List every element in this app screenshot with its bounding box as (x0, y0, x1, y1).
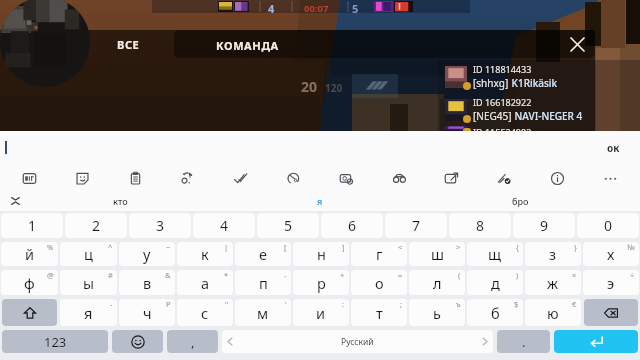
button[interactable]: Handwriting (280, 165, 306, 191)
staticText: р (317, 273, 326, 293)
button[interactable]: 3 (129, 213, 191, 238)
button[interactable]: , (167, 330, 218, 353)
staticText: { (516, 242, 519, 252)
button[interactable]: бро (430, 191, 610, 211)
button[interactable]: ы (60, 270, 117, 295)
staticText: кто (113, 195, 128, 207)
staticText: н (317, 244, 326, 264)
staticText: й (25, 244, 35, 264)
button[interactable]: ф (1, 270, 58, 295)
button[interactable]: х (583, 242, 639, 266)
staticText: п (259, 273, 268, 293)
button[interactable]: а (177, 270, 233, 295)
button[interactable]: ID 166182922 (438, 93, 640, 126)
button[interactable]: Shift (2, 299, 57, 326)
staticText: % (47, 242, 54, 252)
button[interactable]: о (351, 270, 407, 295)
button[interactable]: 9 (513, 213, 575, 238)
button[interactable]: ч (119, 299, 175, 326)
button[interactable]: в (119, 270, 175, 295)
staticText: 3 (156, 216, 165, 235)
button[interactable]: Emoji (112, 330, 163, 353)
staticText: о (375, 273, 384, 293)
button[interactable]: Translate (174, 165, 200, 191)
button[interactable]: г (351, 242, 407, 266)
staticText: у (143, 244, 151, 264)
staticText: 120 (325, 81, 343, 95)
button[interactable]: ь (409, 299, 465, 326)
button[interactable]: 1 (1, 213, 63, 238)
staticText: NAVI-NEGER 4 (512, 109, 583, 123)
staticText: бро (512, 195, 529, 207)
button[interactable]: Clipboard (122, 165, 148, 191)
button[interactable]: 8 (449, 213, 511, 238)
button[interactable]: Expand suggestions (3, 191, 27, 211)
staticText: [shhxg] (473, 76, 509, 90)
staticText: г (376, 244, 383, 264)
button[interactable]: 2 (65, 213, 127, 238)
button[interactable]: я (230, 191, 410, 211)
staticText: 20 (301, 77, 318, 96)
button[interactable]: ок (598, 139, 628, 157)
button[interactable]: ID 118814433 (438, 60, 640, 93)
button[interactable]: я (60, 299, 117, 326)
staticText: 5 (284, 216, 293, 235)
button[interactable]: и (293, 299, 349, 326)
button[interactable]: More options (597, 165, 623, 191)
button[interactable]: GIF (16, 165, 42, 191)
button[interactable]: ж (525, 270, 581, 295)
staticText: ь (433, 303, 441, 323)
staticText: и (316, 303, 326, 323)
button[interactable]: ш (409, 242, 465, 266)
button[interactable]: Info (544, 165, 570, 191)
button[interactable]: кто (30, 191, 210, 211)
button[interactable]: 7 (385, 213, 447, 238)
button[interactable]: к (177, 242, 233, 266)
button[interactable]: Close chat (565, 32, 589, 56)
button[interactable]: . (497, 330, 550, 353)
staticText: ц (84, 244, 93, 264)
staticText: " (225, 299, 229, 309)
button[interactable]: п (235, 270, 291, 295)
button[interactable]: Share screen (438, 165, 464, 191)
button[interactable]: Edit (491, 165, 517, 191)
staticText: 2 (92, 216, 101, 235)
button[interactable]: й (1, 242, 58, 266)
button[interactable]: щ (467, 242, 523, 266)
button[interactable]: ю (525, 299, 581, 326)
button[interactable]: Backspace (584, 299, 638, 326)
staticText: Р (166, 299, 171, 309)
staticText: с (201, 303, 209, 323)
button[interactable]: е (235, 242, 291, 266)
button[interactable]: б (467, 299, 523, 326)
button[interactable]: Theme (333, 165, 359, 191)
button[interactable]: 5 (257, 213, 319, 238)
button[interactable]: Stickers (69, 165, 95, 191)
button[interactable]: з (525, 242, 581, 266)
button[interactable]: э (583, 270, 639, 295)
button[interactable]: Incognito (386, 165, 412, 191)
staticText: & (165, 270, 171, 280)
button[interactable]: Enter (554, 330, 638, 353)
button[interactable]: Русский (222, 330, 493, 353)
button[interactable]: 4 (193, 213, 255, 238)
button[interactable]: 123 (2, 330, 108, 353)
staticText: 1 (28, 216, 37, 235)
button[interactable]: н (293, 242, 349, 266)
button[interactable]: Grammar check (227, 165, 253, 191)
button[interactable]: КОМАНДА (174, 30, 595, 58)
button[interactable]: у (119, 242, 175, 266)
button[interactable]: л (409, 270, 465, 295)
button[interactable]: т (351, 299, 407, 326)
button[interactable]: Minimap (0, 0, 90, 87)
button[interactable]: 6 (321, 213, 383, 238)
button[interactable]: р (293, 270, 349, 295)
button[interactable]: с (177, 299, 233, 326)
button[interactable]: м (235, 299, 291, 326)
button[interactable]: д (467, 270, 523, 295)
staticText: я (84, 303, 93, 323)
button[interactable]: 0 (577, 213, 639, 238)
button[interactable]: ц (60, 242, 117, 266)
button[interactable]: ВСЕ (84, 30, 172, 58)
button[interactable]: ID 115524092 (438, 126, 640, 131)
